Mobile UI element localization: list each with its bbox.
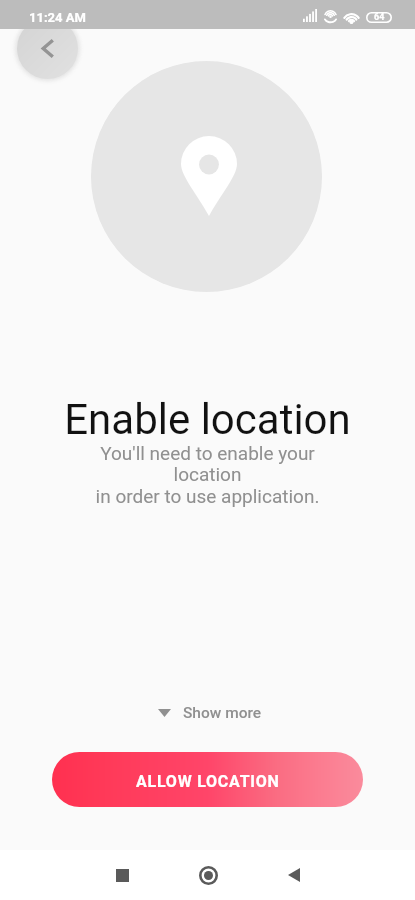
staticText: You'll need to enable your location in o… bbox=[90, 442, 325, 508]
button[interactable]: Back bbox=[17, 18, 78, 79]
staticText: 64 bbox=[374, 12, 385, 23]
button[interactable]: Back bbox=[269, 850, 319, 900]
staticText: 11:24 AM bbox=[29, 10, 86, 25]
staticText: Enable location bbox=[64, 395, 351, 444]
button[interactable]: Home bbox=[183, 850, 233, 900]
staticText: Show more bbox=[183, 704, 262, 722]
button[interactable]: Show more bbox=[146, 700, 270, 726]
button[interactable]: ALLOW LOCATION bbox=[52, 752, 363, 807]
button[interactable]: Recents bbox=[97, 850, 147, 900]
staticText: ALLOW LOCATION bbox=[136, 772, 280, 791]
